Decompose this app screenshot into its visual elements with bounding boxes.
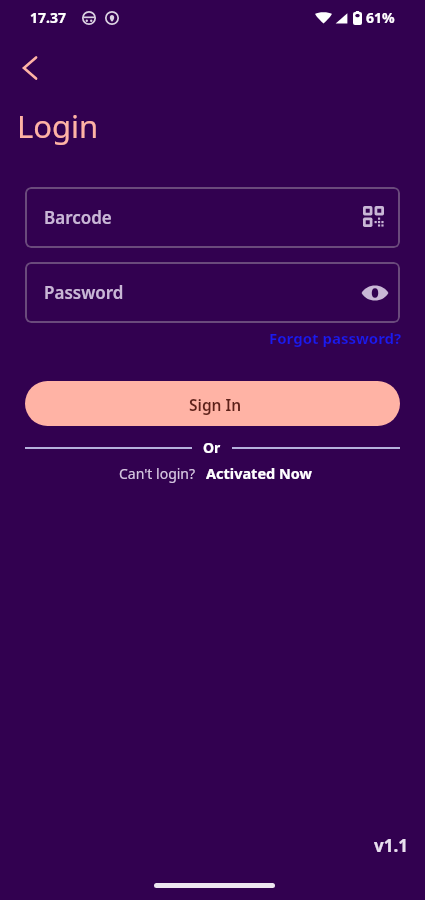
button[interactable]: Forgot password? xyxy=(269,328,425,348)
staticText: Login xyxy=(17,105,99,147)
staticText: 61% xyxy=(366,8,395,27)
button[interactable]: Back xyxy=(8,46,52,90)
staticText: Password xyxy=(44,281,124,304)
button[interactable]: Scan barcode xyxy=(360,203,386,229)
staticText: Or xyxy=(203,438,221,457)
button[interactable]: Show password xyxy=(360,280,390,306)
staticText: Can't login? xyxy=(119,464,196,483)
button[interactable]: Sign In xyxy=(25,381,400,426)
button[interactable]: Barcode xyxy=(25,187,400,248)
button[interactable]: Activated Now xyxy=(206,463,312,483)
staticText: Barcode xyxy=(44,206,112,229)
staticText: Sign In xyxy=(189,394,242,415)
button[interactable]: Password xyxy=(25,262,400,323)
staticText: 17.37 xyxy=(30,8,66,27)
staticText: v1.1 xyxy=(374,834,408,857)
